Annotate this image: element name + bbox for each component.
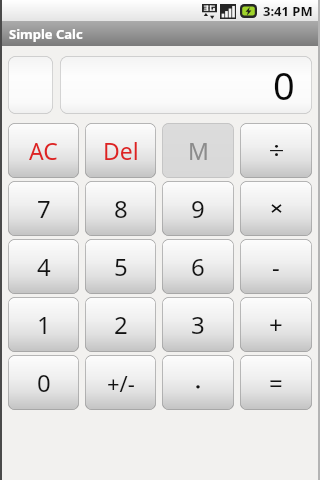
button[interactable] <box>240 181 312 236</box>
button[interactable]: 4 <box>8 239 79 294</box>
button[interactable]: Del <box>85 123 156 178</box>
button[interactable]: M <box>162 123 234 178</box>
button[interactable]: 7 <box>8 181 79 236</box>
button[interactable]: +/- <box>85 355 156 410</box>
staticText: 2 <box>114 308 128 341</box>
staticText: AC <box>29 135 58 166</box>
staticText: 6 <box>191 250 205 283</box>
button[interactable]: 1 <box>8 297 79 352</box>
staticText: - <box>272 250 280 283</box>
button[interactable]: AC <box>8 123 79 178</box>
staticText: Simple Calc <box>9 25 83 43</box>
staticText: = <box>269 366 283 399</box>
staticText: 5 <box>114 250 128 283</box>
staticText: 0 <box>37 366 51 399</box>
button[interactable]: - <box>240 239 312 294</box>
button[interactable]: + <box>240 297 312 352</box>
staticText: 9 <box>191 192 205 225</box>
button[interactable]: 9 <box>162 181 234 236</box>
staticText: 1 <box>37 308 51 341</box>
button[interactable]: 2 <box>85 297 156 352</box>
staticText: + <box>269 308 283 341</box>
staticText: +/- <box>107 368 135 398</box>
staticText: M <box>188 135 209 166</box>
staticText: 0 <box>273 59 295 111</box>
button[interactable]: 5 <box>85 239 156 294</box>
staticText: 4 <box>37 250 51 283</box>
button[interactable] <box>162 355 234 410</box>
staticText: 7 <box>37 192 51 225</box>
other: Battery charging <box>240 4 257 18</box>
button[interactable] <box>240 123 312 178</box>
button[interactable]: 3 <box>162 297 234 352</box>
button[interactable]: 0 <box>8 355 79 410</box>
other: 3G network <box>202 4 217 19</box>
staticText: 3:41 PM <box>263 2 313 20</box>
button[interactable]: = <box>240 355 312 410</box>
staticText: 3 <box>191 308 205 341</box>
other: Signal strength <box>220 4 236 19</box>
button[interactable]: 8 <box>85 181 156 236</box>
button[interactable]: 6 <box>162 239 234 294</box>
staticText: Del <box>103 135 139 166</box>
staticText: 8 <box>114 192 128 225</box>
